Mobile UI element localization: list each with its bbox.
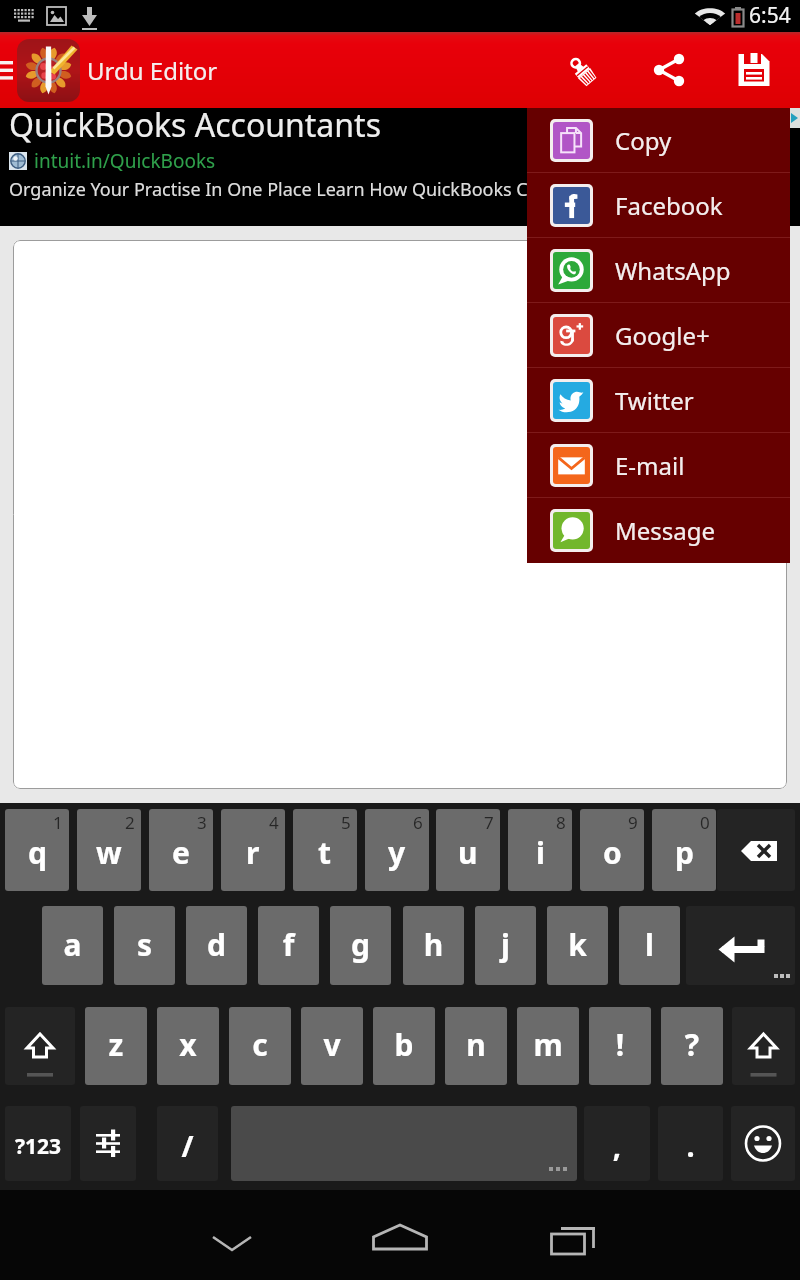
staticText: 5 (341, 811, 351, 834)
staticText: ? (661, 1024, 723, 1085)
button[interactable]: g (330, 906, 391, 985)
staticText: g (330, 924, 391, 985)
staticText: intuit.in/QuickBooks (34, 148, 216, 174)
button[interactable]: ? (661, 1007, 723, 1085)
button[interactable]: 1 (5, 809, 69, 891)
button[interactable]: / (157, 1106, 218, 1181)
button[interactable]: l (619, 906, 680, 985)
staticText: Twitter (615, 384, 694, 417)
button[interactable]: Back (187, 1206, 277, 1280)
staticText: / (157, 1126, 218, 1181)
button[interactable]: Emoji (731, 1106, 795, 1181)
button[interactable]: Save (711, 32, 796, 108)
staticText: 1 (53, 811, 63, 834)
staticText: 6:54 (749, 1, 791, 30)
button[interactable]: Settings (80, 1106, 136, 1181)
button[interactable]: 7 (436, 809, 500, 891)
staticText: 8 (556, 811, 566, 834)
button[interactable]: d (186, 906, 247, 985)
staticText: i (536, 832, 545, 873)
staticText: Message (615, 514, 716, 547)
button[interactable]: Space (231, 1106, 577, 1181)
button[interactable]: ?123 (5, 1106, 71, 1181)
staticText: o (603, 832, 622, 873)
staticText: r (246, 832, 260, 873)
button[interactable]: z (85, 1007, 147, 1085)
button[interactable]: x (157, 1007, 219, 1085)
button[interactable]: m (517, 1007, 579, 1085)
staticText: x (157, 1024, 219, 1085)
staticText: , (584, 1126, 650, 1181)
staticText: 3 (197, 811, 207, 834)
button[interactable]: 9 (580, 809, 644, 891)
button[interactable]: 0 (652, 809, 716, 891)
staticText: 6 (413, 811, 423, 834)
staticText: Copy (615, 124, 672, 157)
staticText: 9 (628, 811, 638, 834)
button[interactable]: Message (527, 498, 790, 563)
button[interactable]: h (403, 906, 464, 985)
button[interactable]: Twitter (527, 368, 790, 433)
staticText: n (445, 1024, 507, 1085)
button[interactable]: n (445, 1007, 507, 1085)
staticText: 2 (125, 811, 135, 834)
staticText: l (619, 924, 680, 985)
staticText: d (186, 924, 247, 985)
staticText: h (403, 924, 464, 985)
staticText: 0 (700, 811, 710, 834)
button[interactable] (13, 240, 787, 789)
button[interactable]: a (42, 906, 103, 985)
staticText: Google+ (615, 319, 710, 352)
staticText: j (475, 924, 536, 985)
button[interactable]: Shift (732, 1007, 795, 1085)
button[interactable]: f (258, 906, 319, 985)
button[interactable]: v (301, 1007, 363, 1085)
staticText: a (42, 924, 103, 985)
staticText: ! (589, 1024, 651, 1085)
button[interactable]: Share (626, 32, 711, 108)
staticText: Organize Your Practise In One Place Lear… (9, 177, 549, 202)
staticText: Urdu Editor (87, 54, 218, 87)
button[interactable]: Google+ (527, 303, 790, 368)
staticText: u (458, 832, 478, 873)
staticText: Facebook (615, 189, 723, 222)
button[interactable]: s (114, 906, 175, 985)
button[interactable]: j (475, 906, 536, 985)
button[interactable]: Enter (686, 906, 795, 985)
staticText: WhatsApp (615, 254, 731, 287)
button[interactable]: Brush (541, 32, 626, 108)
button[interactable]: Backspace (717, 809, 795, 891)
button[interactable]: Copy (527, 108, 790, 173)
button[interactable]: 3 (149, 809, 213, 891)
button[interactable]: 2 (77, 809, 141, 891)
button[interactable]: Menu (0, 32, 20, 108)
button[interactable]: 4 (221, 809, 285, 891)
button[interactable]: . (658, 1106, 723, 1181)
button[interactable]: ! (589, 1007, 651, 1085)
staticText: f (258, 924, 319, 985)
button[interactable]: c (229, 1007, 291, 1085)
button[interactable]: E-mail (527, 433, 790, 498)
button[interactable]: , (584, 1106, 650, 1181)
button[interactable]: b (373, 1007, 435, 1085)
staticText: p (675, 832, 694, 873)
button[interactable]: k (547, 906, 608, 985)
staticText: 4 (269, 811, 279, 834)
staticText: v (301, 1024, 363, 1085)
staticText: 7 (484, 811, 494, 834)
staticText: t (318, 832, 332, 873)
staticText: E-mail (615, 449, 685, 482)
button[interactable]: Facebook (527, 173, 790, 238)
button[interactable]: 5 (293, 809, 357, 891)
staticText: e (172, 832, 190, 873)
staticText: ?123 (5, 1132, 71, 1181)
button[interactable]: 8 (508, 809, 572, 891)
button[interactable]: 6 (365, 809, 429, 891)
staticText: z (85, 1024, 147, 1085)
button[interactable]: Shift (5, 1007, 75, 1085)
staticText: c (229, 1024, 291, 1085)
button[interactable]: Home (355, 1206, 445, 1280)
staticText: y (388, 832, 406, 873)
button[interactable]: WhatsApp (527, 238, 790, 303)
button[interactable]: Recents (531, 1206, 621, 1280)
